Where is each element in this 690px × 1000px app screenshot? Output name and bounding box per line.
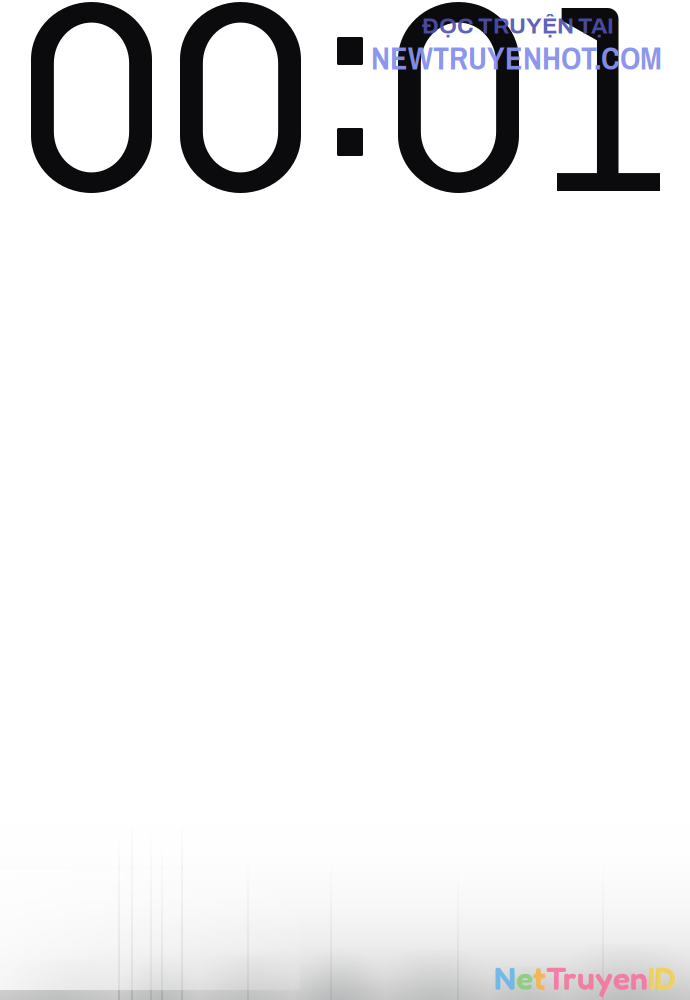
staticText: Truyen [546, 959, 648, 997]
staticText: t [533, 959, 546, 997]
staticText: ĐỌC TRUYỆN TẠI [422, 14, 614, 38]
staticText: e [516, 959, 533, 997]
staticText: N [494, 959, 516, 997]
staticText: ID [648, 959, 676, 997]
staticText: NEWTRUYENHOT.COM [371, 36, 662, 79]
